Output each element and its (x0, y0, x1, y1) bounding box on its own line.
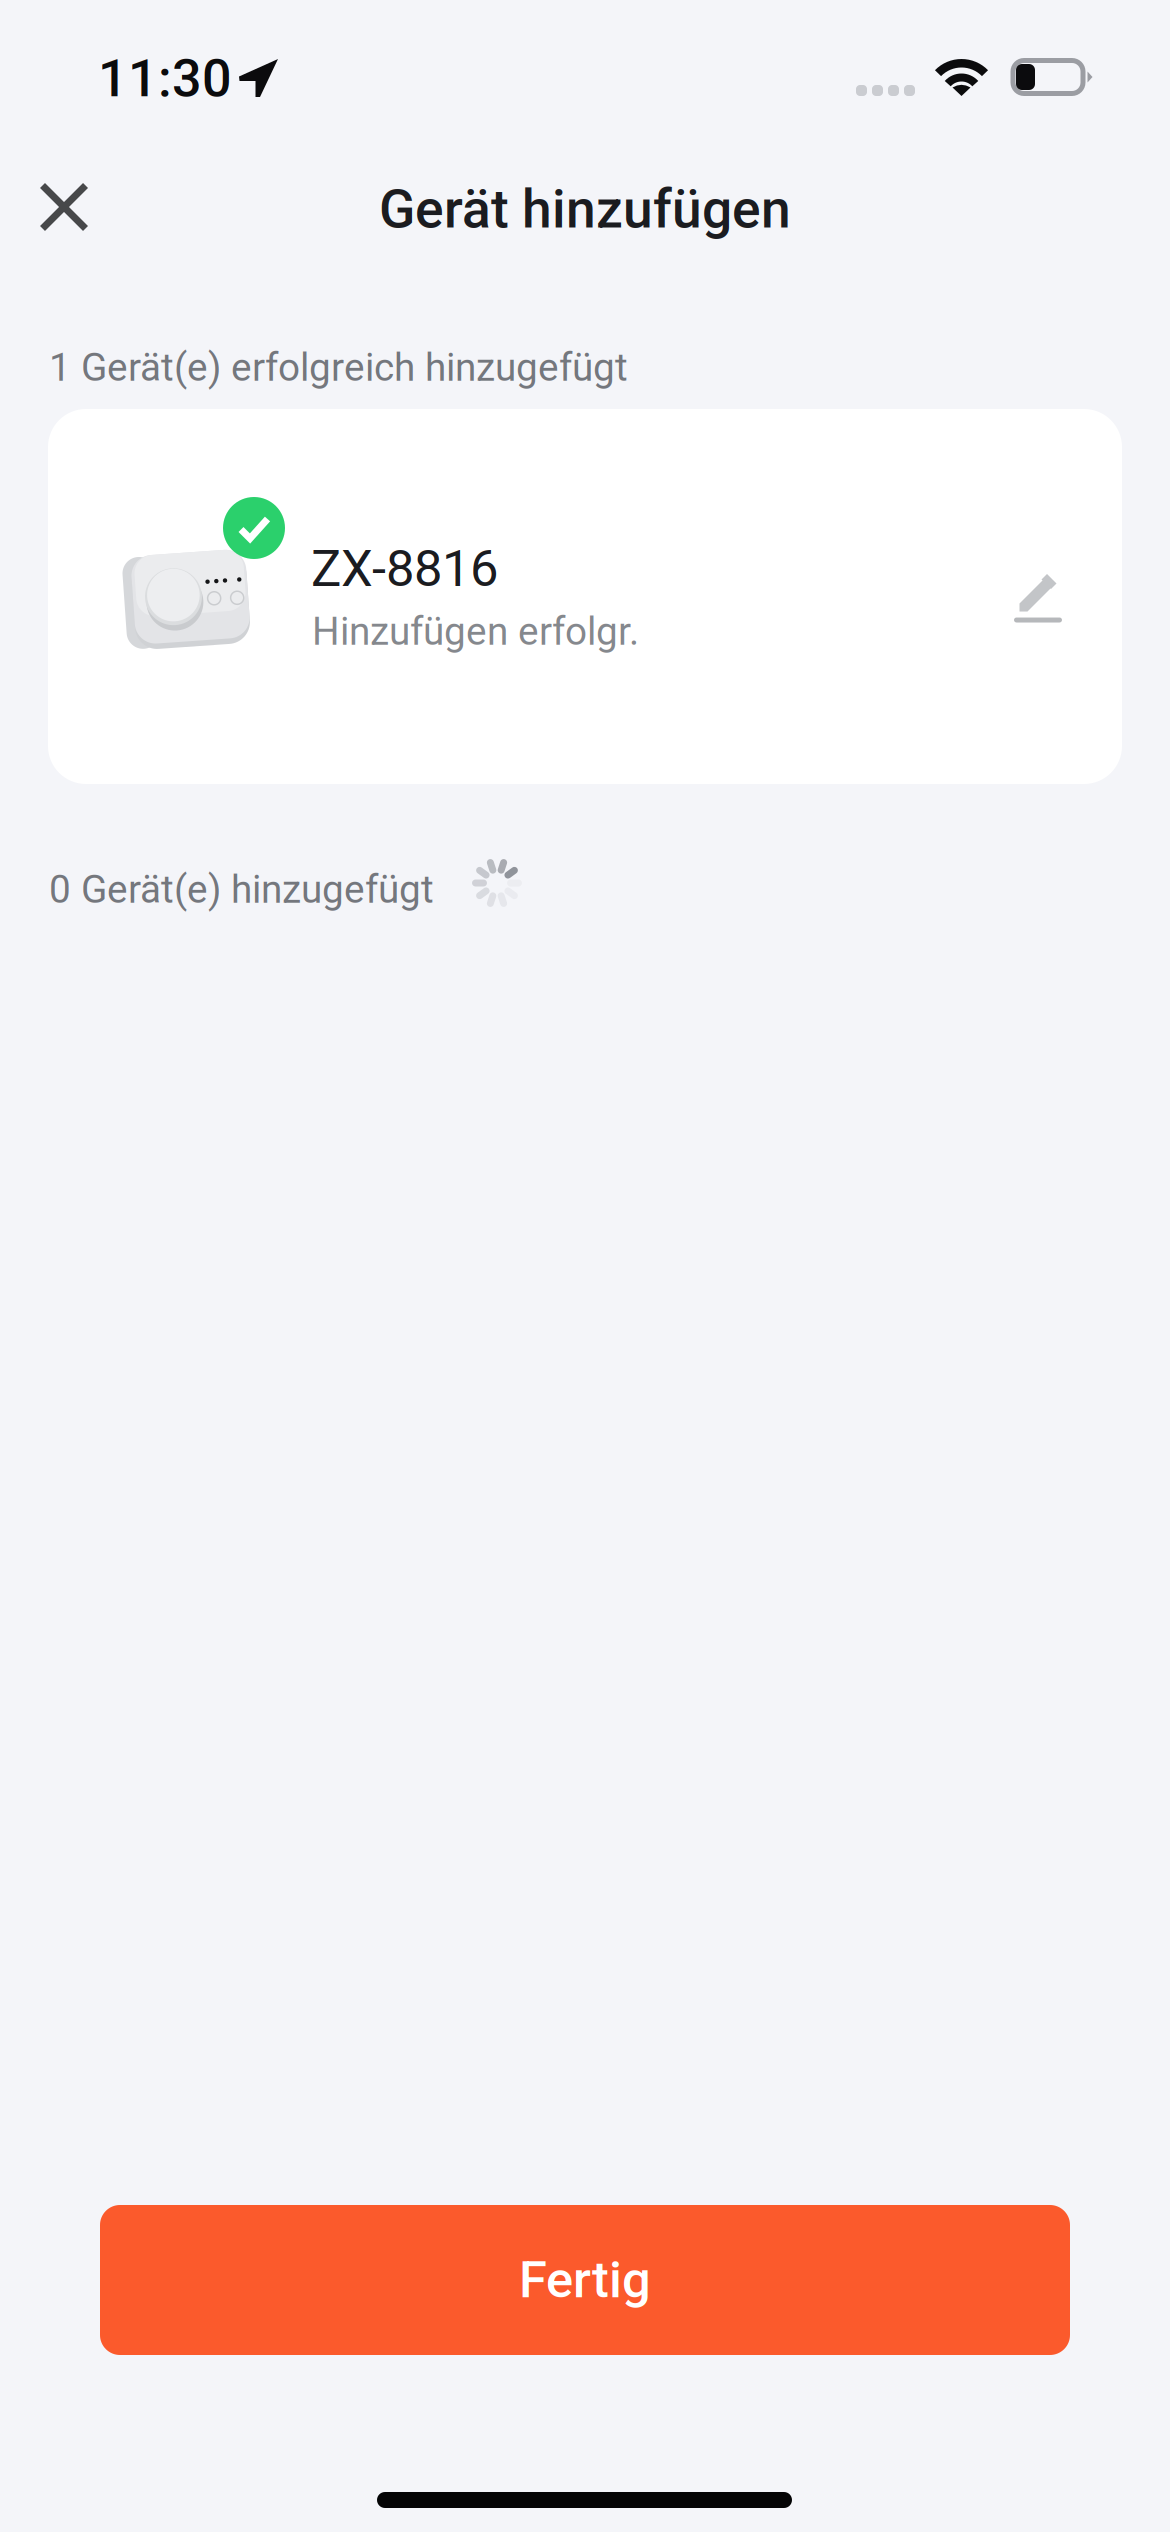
button[interactable]: Schließen (4, 147, 124, 267)
staticText: Gerät hinzufügen (379, 178, 791, 240)
staticText: Hinzufügen erfolgr. (312, 609, 639, 654)
staticText: 1 Gerät(e) erfolgreich hinzugefügt (49, 345, 628, 390)
staticText: Fertig (519, 2250, 651, 2310)
staticText: ZX-8816 (311, 539, 498, 598)
button[interactable]: Fertig (100, 2205, 1070, 2355)
staticText: 0 Gerät(e) hinzugefügt (49, 867, 434, 912)
button[interactable]: Gerät umbenennen (983, 540, 1093, 650)
staticText: 11:30 (98, 48, 232, 109)
